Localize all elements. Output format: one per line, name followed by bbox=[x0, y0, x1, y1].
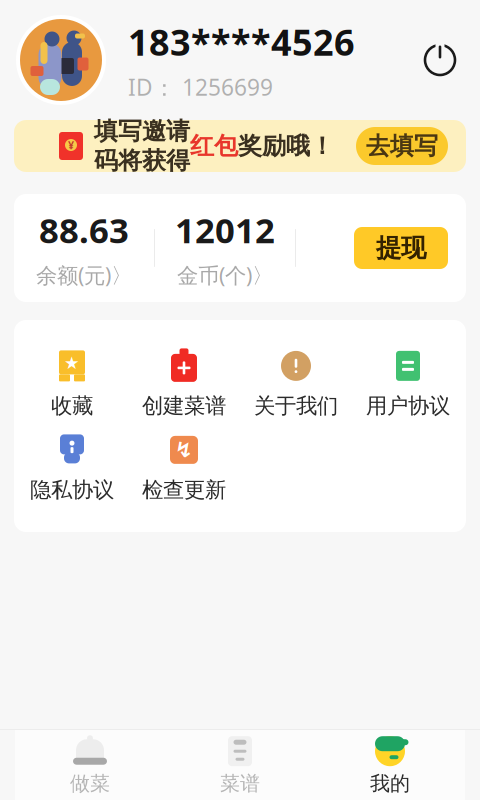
staticText: ↯ bbox=[175, 438, 193, 462]
button[interactable]: ★ bbox=[16, 342, 128, 426]
staticText: ★ bbox=[64, 353, 80, 373]
staticText: 做菜 bbox=[70, 771, 110, 796]
button[interactable]: ¥ bbox=[0, 120, 480, 172]
button[interactable]: 关于我们 bbox=[240, 342, 352, 426]
staticText: 创建菜谱 bbox=[142, 393, 226, 419]
staticText: ¥ bbox=[68, 138, 74, 152]
staticText: 提现 bbox=[376, 232, 426, 263]
button[interactable]: 做菜 bbox=[15, 732, 165, 798]
staticText: 奖励哦！ bbox=[238, 131, 334, 161]
button[interactable]: 88.63 bbox=[14, 213, 154, 283]
staticText: 菜谱 bbox=[220, 771, 260, 796]
button[interactable]: 提现 bbox=[354, 227, 466, 269]
button[interactable]: ↯ bbox=[128, 426, 240, 510]
staticText: 用户协议 bbox=[366, 393, 450, 419]
button[interactable]: 12012 bbox=[155, 213, 295, 283]
staticText: 88.63 bbox=[39, 207, 129, 253]
staticText: 12012 bbox=[175, 207, 275, 253]
staticText: 检查更新 bbox=[142, 477, 226, 503]
button[interactable]: Log out bbox=[422, 42, 480, 78]
staticText: 隐私协议 bbox=[30, 477, 114, 503]
staticText: 余额(元)〉 bbox=[36, 261, 132, 289]
button[interactable]: 菜谱 bbox=[165, 732, 315, 798]
staticText: 收藏 bbox=[51, 393, 93, 419]
staticText: ID： 1256699 bbox=[128, 72, 273, 102]
button[interactable]: 隐私协议 bbox=[16, 426, 128, 510]
staticText: 金币(个)〉 bbox=[177, 261, 273, 289]
staticText: 关于我们 bbox=[254, 393, 338, 419]
button[interactable]: 我的 bbox=[315, 732, 465, 798]
staticText: 去填写 bbox=[366, 131, 438, 161]
staticText: 红包 bbox=[190, 131, 238, 161]
button[interactable]: 用户协议 bbox=[352, 342, 464, 426]
staticText: 我的 bbox=[370, 771, 410, 796]
staticText: 填写邀请码将获得 bbox=[94, 116, 190, 175]
staticText: 183****4526 bbox=[128, 18, 355, 66]
button[interactable]: 创建菜谱 bbox=[128, 342, 240, 426]
